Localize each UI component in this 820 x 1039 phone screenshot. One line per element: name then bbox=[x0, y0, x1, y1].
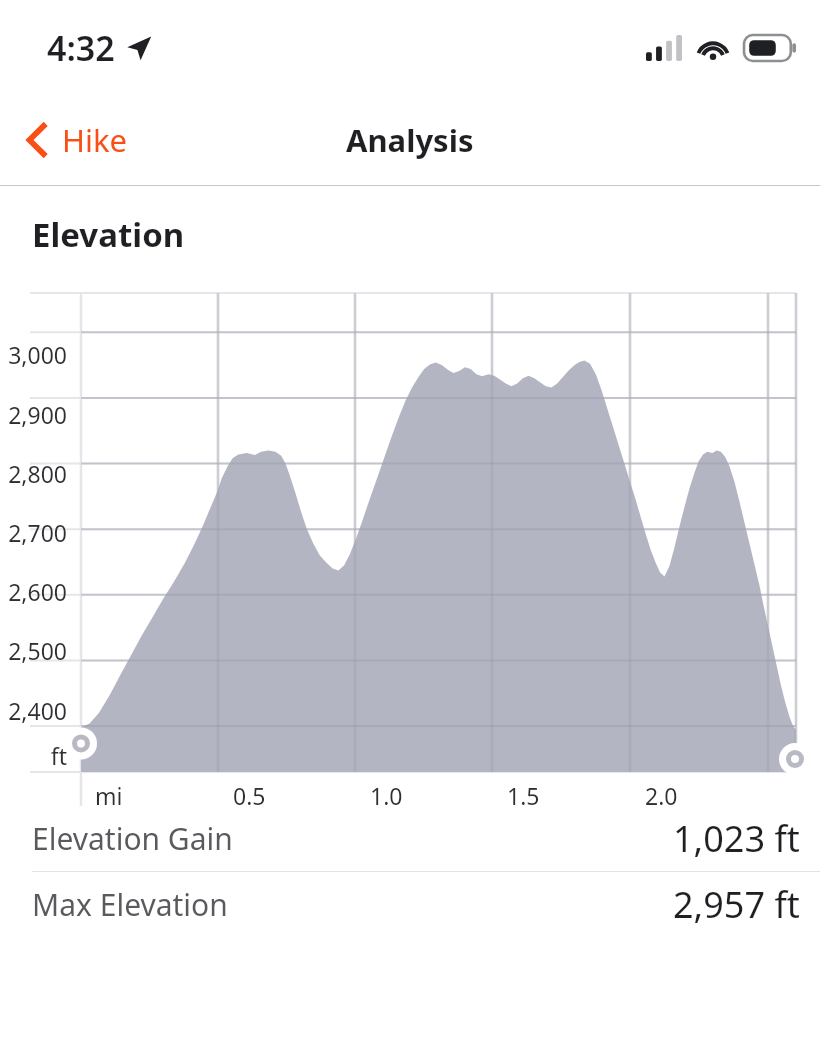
staticText: Hike bbox=[62, 119, 128, 161]
staticText: 0.5 bbox=[233, 780, 266, 806]
staticText: 2,500 bbox=[0, 635, 67, 666]
staticText: 2,900 bbox=[0, 399, 67, 430]
staticText: Analysis bbox=[346, 119, 474, 161]
staticText: 2,800 bbox=[0, 458, 67, 489]
button[interactable]: Max Elevation bbox=[0, 872, 820, 937]
staticText: mi bbox=[95, 780, 123, 806]
staticText: 3,000 bbox=[0, 339, 67, 370]
staticText: 1.0 bbox=[370, 780, 403, 806]
staticText: 1,023 ft bbox=[673, 814, 800, 863]
staticText: 2,600 bbox=[0, 576, 67, 607]
staticText: 1.5 bbox=[507, 780, 540, 806]
staticText: 4:32 bbox=[47, 25, 115, 71]
staticText: 2,957 ft bbox=[673, 880, 800, 929]
button[interactable]: Hike bbox=[0, 109, 146, 171]
staticText: Elevation bbox=[32, 212, 185, 257]
staticText: 2,400 bbox=[0, 695, 67, 726]
staticText: ft bbox=[0, 740, 67, 771]
button[interactable]: Elevation Gain bbox=[0, 806, 820, 871]
staticText: 2,700 bbox=[0, 517, 67, 548]
staticText: Elevation Gain bbox=[32, 818, 233, 859]
staticText: 2.0 bbox=[645, 780, 678, 806]
staticText: Max Elevation bbox=[32, 884, 228, 925]
